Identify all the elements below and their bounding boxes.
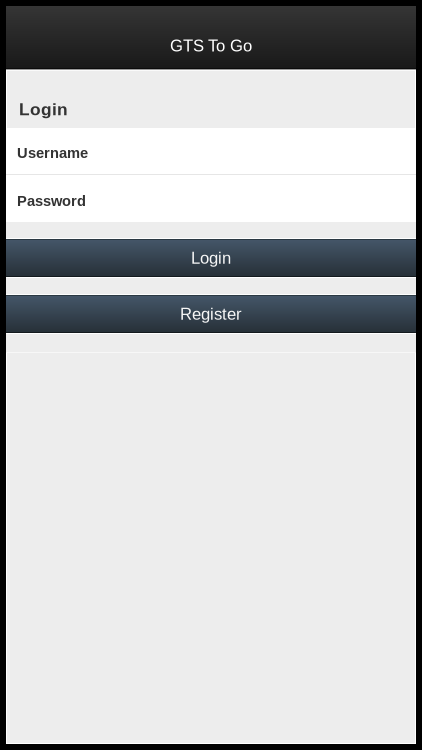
staticText: Register [180,305,242,323]
button[interactable]: Login [6,239,416,277]
staticText: Username [17,145,88,161]
staticText: Password [17,193,86,209]
button[interactable]: Register [6,295,416,333]
staticText: Login [19,100,68,119]
staticText: Login [191,249,231,267]
staticText: GTS To Go [170,36,252,55]
